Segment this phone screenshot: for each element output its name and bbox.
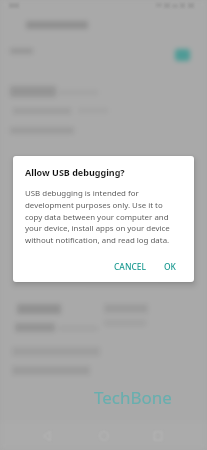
staticText: USB debugging is intended for [25,188,139,199]
staticText: OK [164,261,176,273]
staticText: your device, install apps on your device [25,223,170,234]
staticText: without notification, and read log data. [25,235,170,246]
staticText: Allow USB debugging? [25,166,125,178]
staticText: development purposes only. Use it to [25,200,163,211]
staticText: copy data between your computer and [25,212,169,223]
staticText: TechBone [94,386,172,409]
button[interactable]: OK [160,257,180,277]
staticText: CANCEL [114,261,146,273]
button[interactable]: CANCEL [110,257,150,277]
